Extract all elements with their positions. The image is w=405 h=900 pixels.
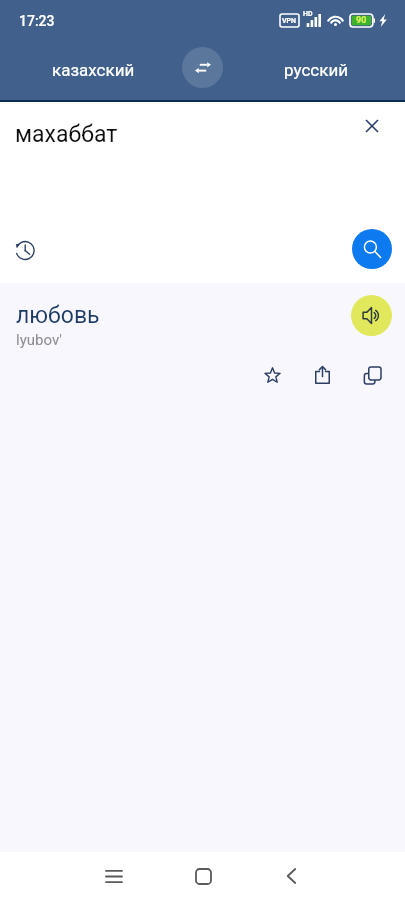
staticText: HD bbox=[303, 10, 313, 18]
staticText: 17:23 bbox=[19, 13, 55, 29]
button[interactable]: Share bbox=[300, 353, 344, 397]
staticText: VPN bbox=[282, 17, 297, 25]
button[interactable]: Listen bbox=[351, 295, 392, 336]
button[interactable]: Copy bbox=[350, 353, 394, 397]
staticText: махаббат bbox=[15, 121, 118, 148]
staticText: 90 bbox=[356, 15, 367, 26]
button[interactable]: Add to favourites bbox=[250, 353, 294, 397]
staticText: казахский bbox=[52, 60, 135, 80]
button[interactable]: Search bbox=[352, 229, 392, 269]
button[interactable]: русский bbox=[227, 40, 405, 100]
staticText: любовь bbox=[16, 302, 100, 329]
button[interactable]: Recent apps bbox=[92, 854, 136, 898]
button[interactable]: Clear text bbox=[350, 104, 394, 148]
staticText: русский bbox=[284, 60, 348, 80]
button[interactable]: Swap languages bbox=[182, 47, 223, 88]
button[interactable]: History bbox=[2, 228, 46, 272]
staticText: lyubov' bbox=[16, 331, 62, 349]
button[interactable]: Back bbox=[269, 854, 313, 898]
button[interactable]: Home bbox=[181, 854, 225, 898]
button[interactable]: казахский bbox=[0, 40, 186, 100]
